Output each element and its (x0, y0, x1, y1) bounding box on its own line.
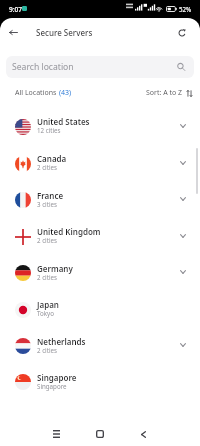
staticText: Canada (37, 153, 67, 164)
staticText: Tokyo (37, 309, 54, 317)
staticText: 2 cities (37, 236, 57, 244)
staticText: Singapore (37, 382, 67, 390)
staticText: Japan (37, 299, 59, 310)
staticText: 2 cities (37, 273, 57, 281)
staticText: 2 cities (37, 346, 57, 354)
button[interactable]: Netherlands (0, 328, 200, 364)
button[interactable]: Search location (6, 56, 194, 78)
button[interactable]: Canada (0, 145, 200, 182)
staticText: All Locations (15, 88, 59, 98)
staticText: Netherlands (37, 336, 86, 347)
button[interactable]: Sort: A to Z (146, 88, 193, 98)
staticText: Sort: A to Z (146, 88, 183, 98)
button[interactable]: Back (2, 18, 24, 47)
button[interactable]: Refresh (170, 18, 194, 47)
staticText: 9:07 (9, 5, 23, 14)
button[interactable]: United States (0, 108, 200, 145)
staticText: Search location (12, 61, 74, 73)
button[interactable]: Germany (0, 255, 200, 291)
staticText: United Kingdom (37, 226, 101, 237)
button[interactable]: Japan (0, 291, 200, 328)
button[interactable]: Recent apps (44, 422, 68, 446)
staticText: Secure Servers (36, 27, 93, 38)
staticText: Singapore (37, 372, 77, 383)
staticText: United States (37, 116, 90, 127)
staticText: 2 cities (37, 163, 57, 171)
staticText: 52% (179, 5, 192, 13)
button[interactable]: Singapore (0, 364, 200, 400)
staticText: 3 cities (37, 200, 57, 208)
staticText: (43) (59, 88, 72, 98)
button[interactable]: Home (88, 422, 112, 446)
button[interactable]: United Kingdom (0, 218, 200, 255)
staticText: Germany (37, 263, 73, 274)
staticText: 12 cities (37, 126, 61, 134)
staticText: France (37, 190, 64, 201)
button[interactable]: Back (131, 422, 155, 446)
button[interactable]: France (0, 182, 200, 218)
